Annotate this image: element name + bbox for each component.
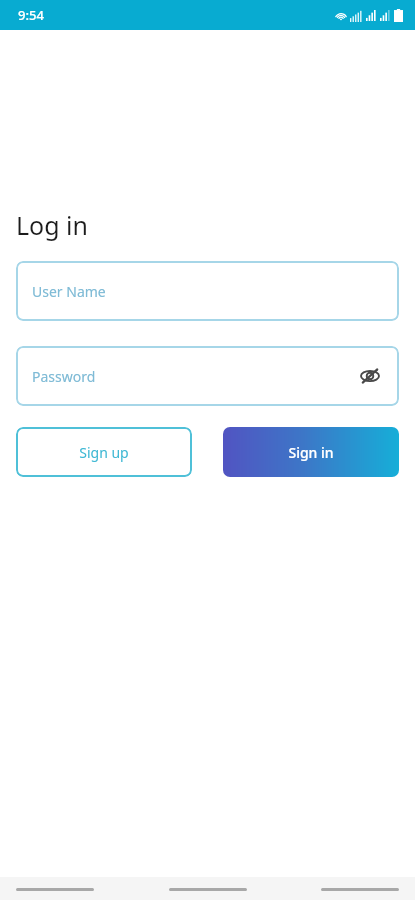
staticText: Log in — [16, 208, 89, 242]
button[interactable]: Recent apps — [16, 881, 94, 897]
staticText: Password — [32, 367, 96, 386]
button[interactable]: Password — [16, 346, 399, 406]
staticText: Sign in — [288, 443, 334, 462]
staticText: 9:54 — [18, 6, 44, 24]
button[interactable]: Sign up — [16, 427, 192, 477]
button[interactable]: Back — [321, 881, 399, 897]
button[interactable]: Home — [169, 881, 247, 897]
staticText: Sign up — [79, 443, 129, 462]
button[interactable]: Sign in — [223, 427, 399, 477]
button[interactable]: User Name — [16, 261, 399, 321]
button[interactable]: Toggle password visibility — [355, 361, 385, 391]
staticText: User Name — [32, 282, 106, 301]
